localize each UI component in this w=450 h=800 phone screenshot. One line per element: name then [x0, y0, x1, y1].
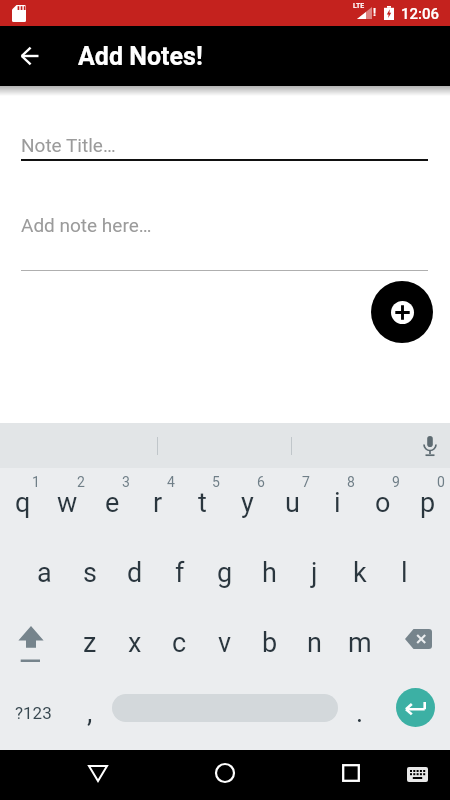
staticText: v — [218, 627, 232, 659]
button[interactable]: , — [67, 678, 112, 748]
staticText: ! — [373, 6, 376, 19]
staticText: o — [375, 487, 391, 519]
staticText: r — [153, 487, 163, 519]
button[interactable] — [382, 608, 450, 678]
button[interactable]: u — [270, 468, 315, 538]
staticText: u — [285, 487, 300, 519]
button[interactable] — [396, 688, 435, 727]
button[interactable]: y — [225, 468, 270, 538]
button[interactable]: Add note here… — [21, 210, 429, 270]
staticText: 5 — [212, 474, 220, 490]
staticText: c — [172, 627, 187, 659]
button[interactable] — [401, 762, 433, 786]
button[interactable]: q — [0, 468, 45, 538]
button[interactable]: r — [135, 468, 180, 538]
button[interactable]: a — [22, 538, 67, 608]
staticText: q — [15, 487, 31, 519]
staticText: i — [334, 487, 341, 519]
button[interactable]: l — [382, 538, 427, 608]
button[interactable]: d — [112, 538, 157, 608]
staticText: ?123 — [15, 703, 52, 723]
button[interactable]: s — [67, 538, 112, 608]
staticText: d — [127, 557, 143, 589]
staticText: t — [198, 487, 207, 519]
staticText: 8 — [347, 474, 355, 490]
button[interactable]: m — [337, 608, 382, 678]
staticText: 9 — [392, 474, 400, 490]
staticText: w — [57, 487, 78, 519]
button[interactable]: e — [90, 468, 135, 538]
button[interactable]: . — [337, 678, 382, 748]
button[interactable]: i — [315, 468, 360, 538]
staticText: , — [87, 697, 93, 729]
staticText: h — [262, 557, 277, 589]
staticText: 7 — [302, 474, 310, 490]
staticText: e — [105, 487, 120, 519]
staticText: f — [175, 557, 185, 589]
staticText: Add Notes! — [78, 42, 203, 71]
staticText: 2 — [77, 474, 85, 490]
button[interactable]: b — [247, 608, 292, 678]
staticText: a — [37, 557, 52, 589]
staticText: 0 — [437, 474, 445, 490]
button[interactable] — [416, 429, 444, 463]
button[interactable] — [78, 756, 118, 790]
button[interactable]: g — [202, 538, 247, 608]
staticText: b — [262, 627, 278, 659]
staticText: Note Title… — [21, 134, 116, 156]
button[interactable]: Note Title… — [21, 128, 429, 159]
button[interactable]: k — [337, 538, 382, 608]
staticText: y — [241, 487, 254, 519]
staticText: p — [420, 487, 436, 519]
staticText: 4 — [167, 474, 175, 490]
button[interactable]: v — [202, 608, 247, 678]
button[interactable]: o — [360, 468, 405, 538]
staticText: Add note here… — [21, 214, 152, 236]
button[interactable]: f — [157, 538, 202, 608]
staticText: k — [353, 557, 367, 589]
staticText: 6 — [257, 474, 265, 490]
button[interactable]: c — [157, 608, 202, 678]
button[interactable]: t — [180, 468, 225, 538]
button[interactable] — [371, 281, 433, 343]
button[interactable]: z — [67, 608, 112, 678]
button[interactable] — [331, 756, 371, 790]
button[interactable] — [205, 756, 245, 790]
button[interactable] — [112, 694, 338, 722]
button[interactable]: x — [112, 608, 157, 678]
button[interactable]: p — [405, 468, 450, 538]
staticText: . — [356, 697, 364, 729]
button[interactable]: j — [292, 538, 337, 608]
button[interactable]: h — [247, 538, 292, 608]
button[interactable] — [0, 608, 67, 678]
button[interactable]: w — [45, 468, 90, 538]
staticText: LTE — [353, 2, 365, 10]
staticText: x — [128, 627, 142, 659]
staticText: 12:06 — [401, 5, 440, 23]
staticText: g — [217, 557, 233, 589]
button[interactable]: n — [292, 608, 337, 678]
staticText: 3 — [122, 474, 130, 490]
staticText: z — [83, 627, 97, 659]
staticText: m — [348, 627, 372, 659]
staticText: s — [83, 557, 97, 589]
staticText: n — [307, 627, 322, 659]
button[interactable] — [8, 34, 52, 78]
staticText: l — [401, 557, 408, 589]
staticText: 1 — [32, 474, 40, 490]
button[interactable]: ?123 — [0, 678, 67, 748]
staticText: j — [311, 557, 318, 589]
